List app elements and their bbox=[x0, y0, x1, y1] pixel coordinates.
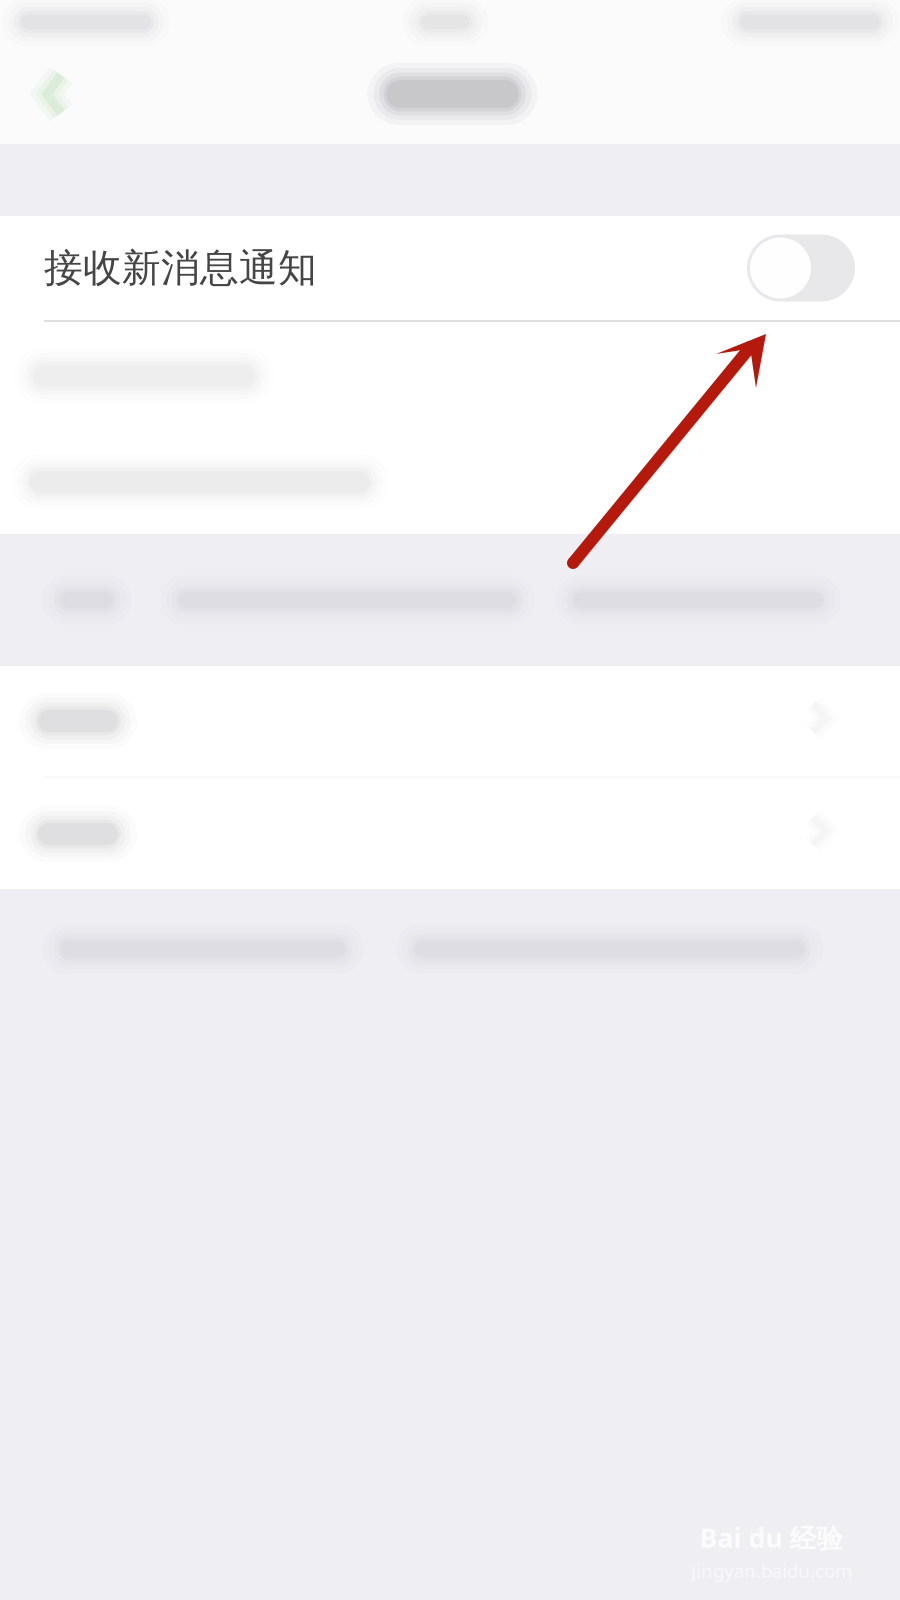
button[interactable] bbox=[0, 666, 900, 776]
button[interactable] bbox=[0, 322, 900, 430]
staticText: jingyan.baidu.com bbox=[691, 1558, 852, 1583]
staticText: Bai du 经验 bbox=[699, 1520, 843, 1555]
button[interactable] bbox=[0, 430, 900, 534]
button[interactable] bbox=[0, 779, 900, 889]
button[interactable]: 接收新消息通知 bbox=[0, 216, 900, 320]
staticText: 接收新消息通知 bbox=[44, 244, 317, 292]
button[interactable]: Back bbox=[21, 51, 89, 137]
